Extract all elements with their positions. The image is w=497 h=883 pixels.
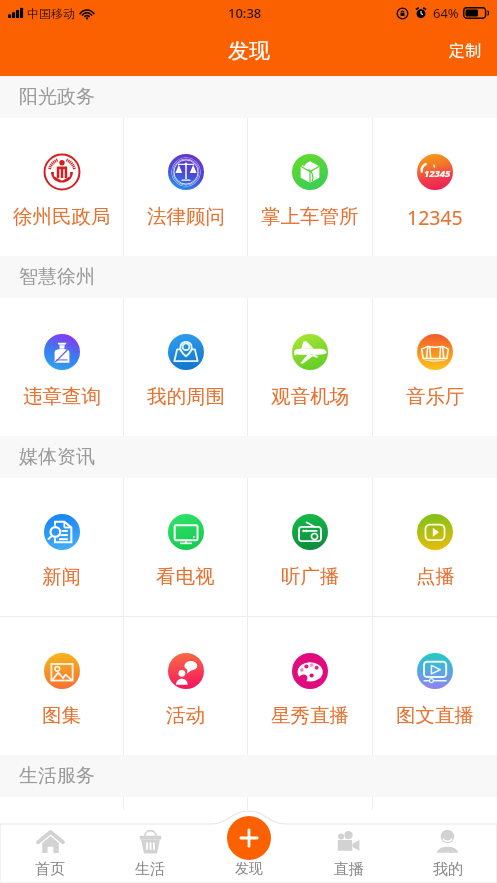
staticText: 徐州民政局 (13, 204, 111, 229)
button[interactable]: 掌上车管所 (248, 118, 372, 256)
staticText: 活动 (166, 703, 205, 728)
button[interactable]: 生活 (100, 824, 200, 883)
button[interactable]: 图集 (0, 617, 123, 755)
button[interactable]: Add (227, 816, 271, 860)
button[interactable]: 点播 (373, 478, 497, 616)
staticText: 我的周围 (147, 384, 225, 409)
staticText: 发现 (235, 860, 263, 878)
staticText: 媒体资讯 (19, 445, 95, 469)
staticText: 掌上车管所 (261, 204, 359, 229)
staticText: 听广播 (281, 564, 340, 589)
button[interactable]: 我的 (398, 824, 497, 883)
staticText: 64% (433, 4, 459, 22)
staticText: 观音机场 (271, 384, 349, 409)
staticText: 图文直播 (396, 703, 474, 728)
button[interactable]: 观音机场 (248, 298, 372, 436)
button[interactable]: 12345 (373, 118, 497, 256)
button[interactable]: 音乐厅 (373, 298, 497, 436)
staticText: 首页 (35, 860, 65, 879)
button[interactable]: 直播 (299, 824, 398, 883)
staticText: 生活 (135, 860, 165, 879)
staticText: 智慧徐州 (19, 265, 95, 289)
staticText: 图集 (42, 703, 81, 728)
staticText: 法律顾问 (147, 204, 225, 229)
button[interactable]: 活动 (124, 617, 247, 755)
staticText: 直播 (334, 860, 364, 879)
staticText: 星秀直播 (271, 703, 349, 728)
staticText: 发现 (228, 38, 270, 64)
staticText: 我的 (433, 860, 463, 879)
button[interactable]: 我的周围 (124, 298, 247, 436)
button[interactable]: 徐州民政局 (0, 118, 123, 256)
staticText: 12345 (407, 204, 463, 231)
button[interactable]: 法律顾问 (124, 118, 247, 256)
button[interactable]: 首页 (0, 824, 100, 883)
staticText: 阳光政务 (19, 85, 95, 109)
staticText: 新闻 (42, 564, 81, 589)
staticText: 看电视 (156, 564, 215, 589)
staticText: 10:38 (228, 4, 262, 22)
staticText: 音乐厅 (406, 384, 465, 409)
button[interactable]: 违章查询 (0, 298, 123, 436)
staticText: 点播 (416, 564, 455, 589)
button[interactable]: 听广播 (248, 478, 372, 616)
button[interactable]: 看电视 (124, 478, 247, 616)
button[interactable]: 新闻 (0, 478, 123, 616)
staticText: 定制 (449, 41, 481, 61)
button[interactable]: 定制 (433, 26, 497, 76)
staticText: 中国移动 (27, 6, 75, 21)
staticText: 违章查询 (23, 384, 101, 409)
button[interactable]: 图文直播 (373, 617, 497, 755)
staticText: 12345 (424, 167, 451, 180)
staticText: 生活服务 (19, 764, 95, 788)
button[interactable]: 星秀直播 (248, 617, 372, 755)
